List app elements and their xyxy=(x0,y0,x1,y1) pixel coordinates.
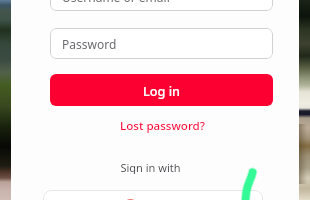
button[interactable]: Log in xyxy=(50,74,273,106)
button[interactable]: Sign in with Google xyxy=(43,190,263,200)
button[interactable]: Lost password? xyxy=(112,118,212,134)
staticText: Username or email xyxy=(62,0,170,5)
staticText: Lost password? xyxy=(120,118,205,134)
button[interactable]: Username or email xyxy=(50,0,273,11)
staticText: Log in xyxy=(143,82,181,99)
staticText: Password xyxy=(62,36,117,52)
button[interactable]: Password xyxy=(50,28,273,59)
staticText: Sign in with xyxy=(120,160,181,174)
